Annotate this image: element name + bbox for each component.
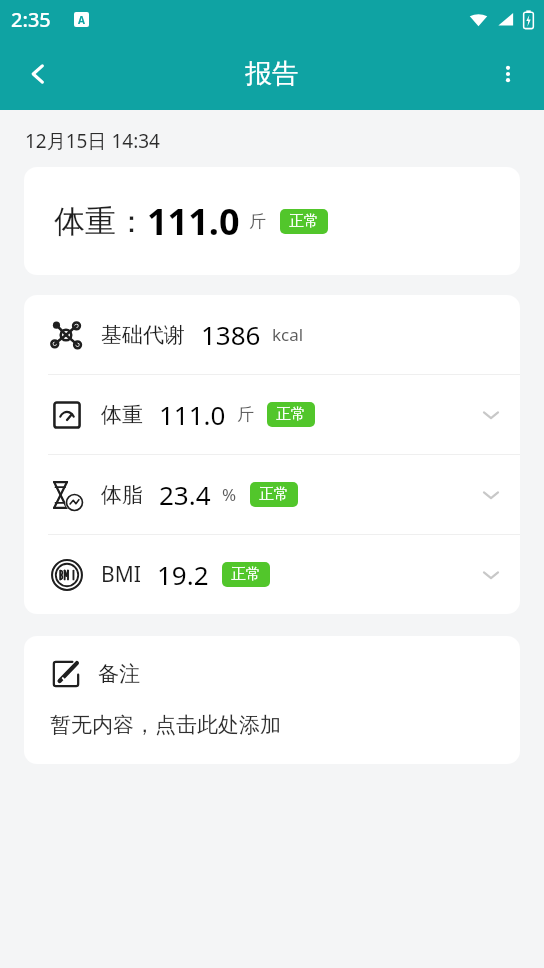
staticText: A [78, 13, 85, 27]
staticText: 111.0 [147, 197, 240, 246]
staticText: 19.2 [157, 557, 209, 592]
staticText: 111.0 [159, 397, 226, 432]
button[interactable]: 体重 [24, 375, 520, 454]
button[interactable]: Back [14, 50, 62, 98]
staticText: % [222, 483, 237, 506]
staticText: 报告 [245, 57, 299, 91]
staticText: BMI [101, 560, 141, 589]
staticText: 23.4 [159, 477, 211, 512]
staticText: 12月15日 14:34 [25, 128, 160, 154]
staticText: 暂无内容，点击此处添加 [50, 712, 281, 738]
button[interactable]: More options [484, 50, 532, 98]
button[interactable]: 备注 [24, 636, 520, 764]
staticText: 备注 [98, 661, 140, 687]
staticText: 正常 [276, 405, 306, 424]
staticText: 正常 [231, 565, 261, 584]
staticText: 体脂 [101, 482, 143, 508]
staticText: 正常 [259, 485, 289, 504]
staticText: 斤 [237, 404, 254, 425]
staticText: 体重 [101, 402, 143, 428]
staticText: 斤 [249, 211, 266, 232]
button[interactable]: 体脂 [24, 455, 520, 534]
staticText: kcal [272, 323, 304, 346]
button[interactable]: 基础代谢 [24, 295, 520, 374]
staticText: 基础代谢 [101, 322, 185, 348]
staticText: 1386 [201, 317, 261, 352]
button[interactable]: 体重： [24, 167, 520, 275]
staticText: 2:35 [11, 6, 51, 33]
staticText: 正常 [289, 212, 319, 231]
staticText: 体重： [54, 202, 147, 241]
button[interactable]: BMI [24, 535, 520, 614]
